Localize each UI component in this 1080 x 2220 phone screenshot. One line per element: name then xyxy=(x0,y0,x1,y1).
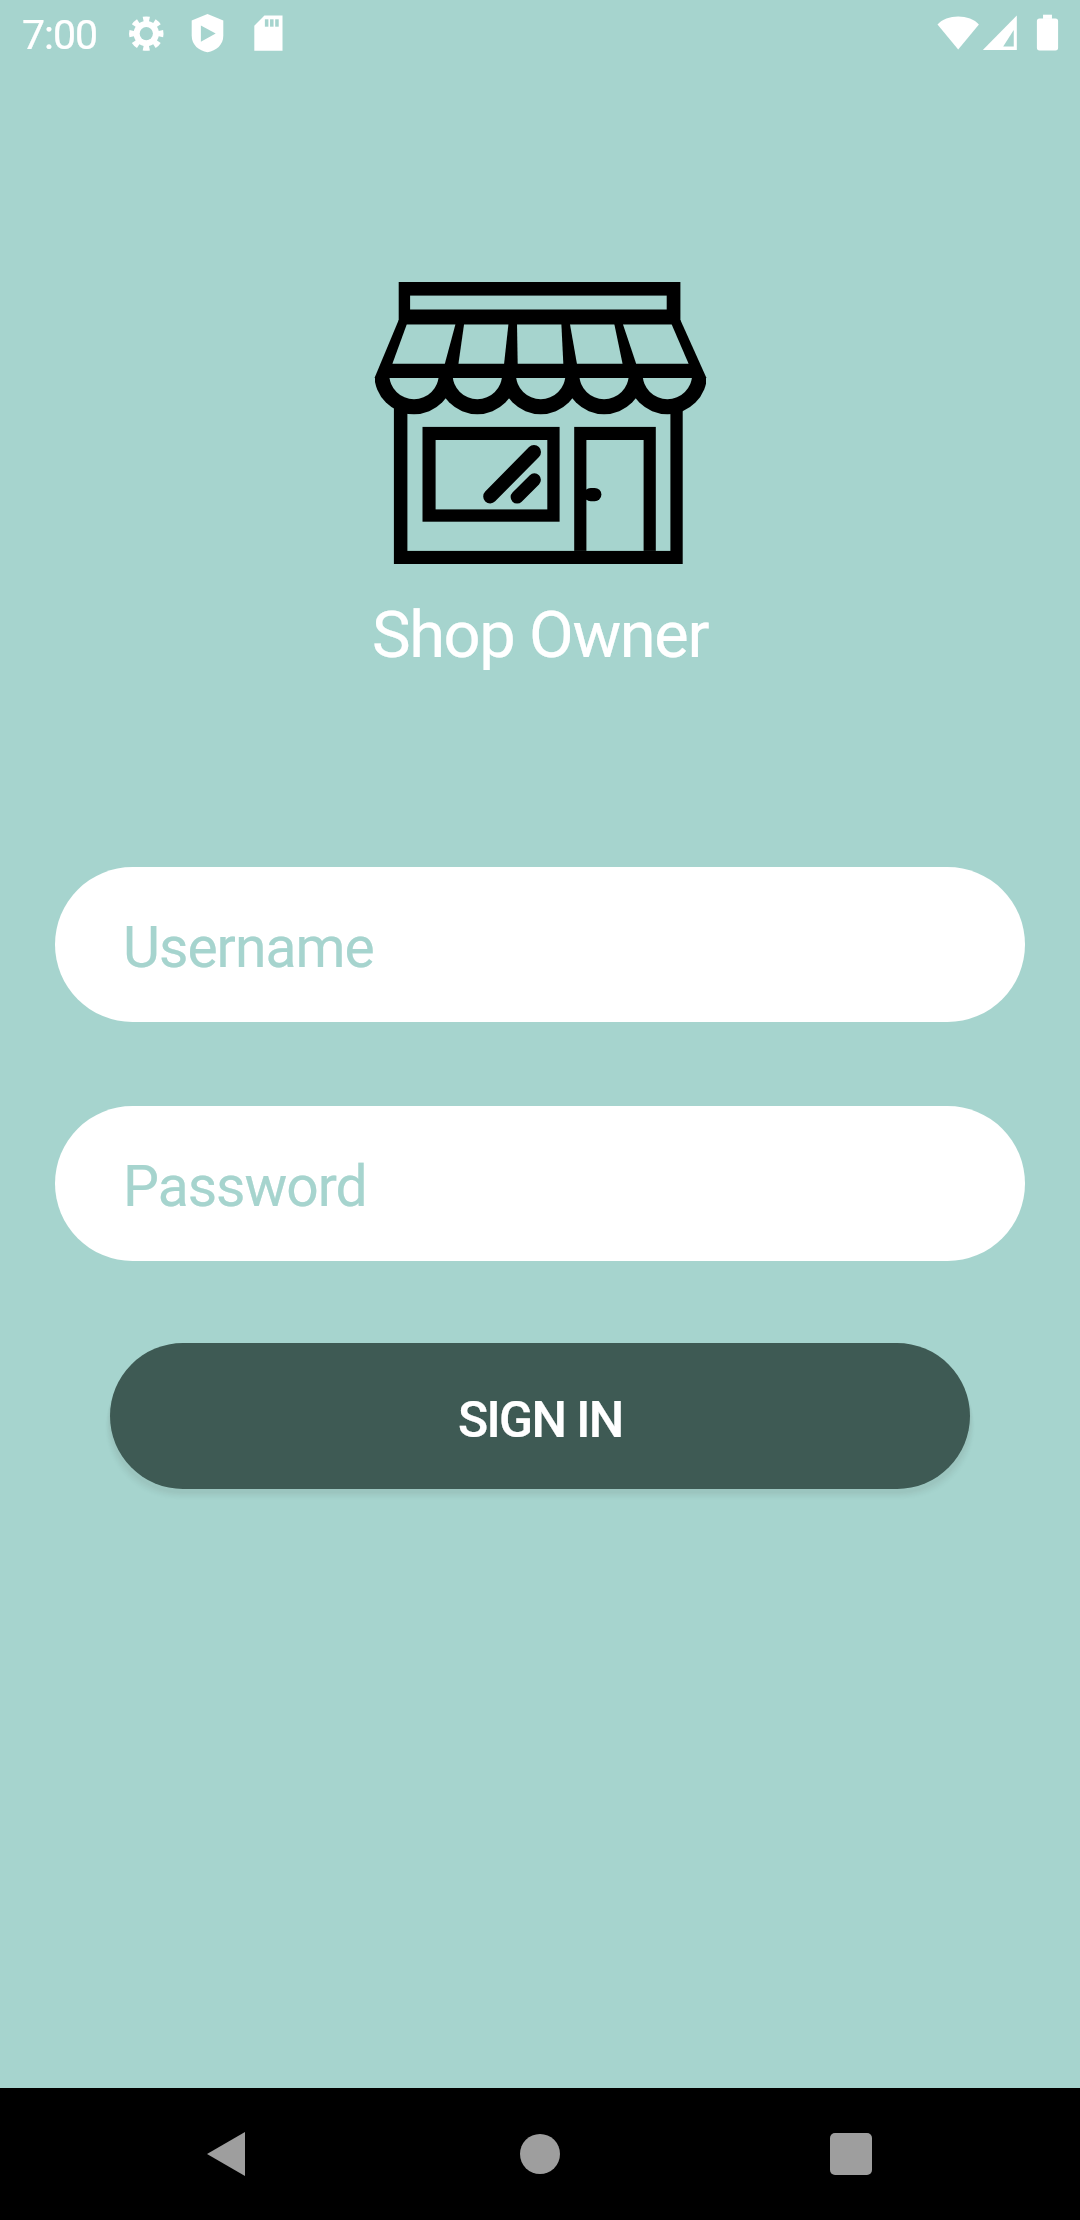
button[interactable]: SIGN IN xyxy=(110,1343,970,1489)
button[interactable]: Password xyxy=(55,1106,1025,1261)
staticText: Password xyxy=(123,1153,367,1220)
staticText: Username xyxy=(123,914,374,981)
button[interactable]: Recent apps xyxy=(801,2104,901,2204)
button[interactable]: Username xyxy=(55,867,1025,1022)
staticText: SIGN IN xyxy=(458,1391,623,1450)
button[interactable]: Back xyxy=(176,2104,276,2204)
staticText: 7:00 xyxy=(22,11,98,59)
button[interactable]: Home xyxy=(490,2104,590,2204)
staticText: Shop Owner xyxy=(0,597,1080,673)
